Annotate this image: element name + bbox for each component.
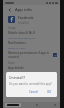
other: Toggle <box>53 53 57 57</box>
staticText: Usage <box>8 26 16 30</box>
staticText: Facebook <box>18 15 34 20</box>
staticText: Do you want to uninstall this app? <box>9 82 52 86</box>
staticText: in the store <box>8 71 22 74</box>
staticText: Uninstall? <box>9 75 25 80</box>
staticText: Installed <box>18 21 29 25</box>
button[interactable]: Remove permissions if app is unused <box>3 50 60 60</box>
staticText: Cancel <box>29 90 38 94</box>
button[interactable]: App details <box>3 65 60 75</box>
button[interactable]: Mobile data & Wi-Fi <box>3 30 60 40</box>
staticText: About 16 / day <box>8 46 26 49</box>
staticText: Store <box>8 61 15 65</box>
button[interactable]: Facebook <box>3 14 60 25</box>
staticText: Cache <box>8 76 16 80</box>
button[interactable]: Storage cache <box>3 80 60 86</box>
button[interactable]: Recents <box>5 103 21 107</box>
staticText: Storage cache <box>8 81 28 85</box>
staticText: OK <box>47 90 51 94</box>
button[interactable]: OK <box>44 89 54 95</box>
staticText: App details <box>8 66 24 70</box>
staticText: App info <box>15 7 32 13</box>
staticText: Remove permissions if app is unused <box>8 51 51 59</box>
button[interactable]: Cancel <box>26 89 41 95</box>
button[interactable]: Back <box>6 6 13 13</box>
button[interactable]: Back <box>53 103 57 107</box>
button[interactable]: Home <box>35 103 39 107</box>
staticText: Notifications <box>8 41 26 45</box>
staticText: Mobile data & Wi-Fi <box>8 31 36 35</box>
button[interactable]: Notifications <box>3 40 60 50</box>
staticText: 268 MB used since Jun 1 <box>8 36 37 39</box>
